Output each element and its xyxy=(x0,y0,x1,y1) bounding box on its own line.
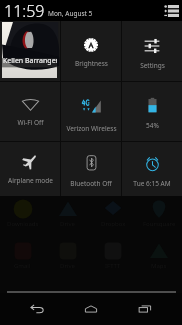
button[interactable]: Dropbox xyxy=(90,196,136,238)
staticText: 11:59 xyxy=(4,0,45,21)
staticText: Brightness xyxy=(75,59,108,68)
staticText: Mon, August 5 xyxy=(48,9,93,18)
button[interactable]: Back xyxy=(20,293,54,325)
staticText: Wi-Fi Off xyxy=(17,118,44,127)
button[interactable]: Verizon Wireless xyxy=(61,82,121,141)
button[interactable]: Foursquare xyxy=(136,196,182,238)
button[interactable]: Brightness xyxy=(61,21,121,81)
button[interactable]: IFTTT xyxy=(90,238,136,280)
button[interactable]: Kellen Barranger xyxy=(2,22,57,78)
staticText: Tue 6:15 AM xyxy=(133,179,171,188)
button[interactable]: Tue 6:15 AM xyxy=(122,142,182,196)
button[interactable]: Wi-Fi Off xyxy=(0,82,60,141)
staticText: Airplane mode xyxy=(8,176,53,185)
button[interactable]: Quick settings list xyxy=(163,2,180,19)
button[interactable]: Settings xyxy=(122,21,182,81)
button[interactable]: Airplane mode xyxy=(0,142,60,196)
staticText: Bluetooth Off xyxy=(70,179,112,188)
staticText: Kellen Barranger xyxy=(3,56,57,66)
button[interactable]: 54% xyxy=(122,82,182,141)
button[interactable]: Bluetooth Off xyxy=(61,142,121,196)
staticText: Settings xyxy=(140,61,165,70)
button[interactable]: Downloads xyxy=(0,196,45,238)
button[interactable]: Gmail xyxy=(0,238,45,280)
staticText: Verizon Wireless xyxy=(66,124,117,133)
staticText: 54% xyxy=(146,121,159,130)
button[interactable]: Home xyxy=(74,293,108,325)
button[interactable]: Drive xyxy=(45,196,90,238)
button[interactable]: Recent apps xyxy=(128,293,162,325)
